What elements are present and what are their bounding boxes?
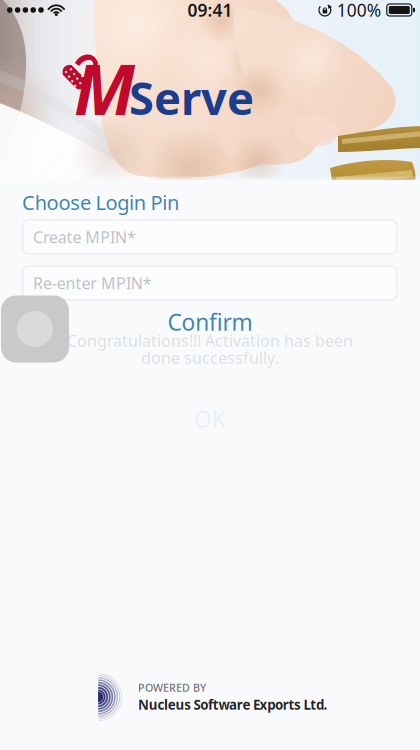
staticText: done successfully. — [141, 347, 279, 368]
button[interactable]: Re-enter MPIN* — [23, 266, 397, 300]
staticText: Create MPIN* — [33, 226, 136, 248]
staticText: Serve — [129, 67, 254, 127]
button[interactable]: Create MPIN* — [23, 220, 397, 254]
staticText: Confirm — [168, 307, 252, 337]
staticText: Nucleus Software Exports Ltd. — [138, 696, 328, 713]
staticText: POWERED BY — [138, 681, 206, 695]
staticText: Choose Login Pin — [22, 189, 179, 216]
staticText: Congratulations!!! Activation has been — [67, 330, 353, 351]
staticText: Re-enter MPIN* — [33, 272, 152, 294]
staticText: 09:41 — [187, 0, 232, 21]
button[interactable]: Confirm — [130, 308, 290, 336]
staticText: OK — [194, 404, 226, 434]
staticText: M — [74, 42, 135, 134]
staticText: 100% — [337, 0, 381, 21]
